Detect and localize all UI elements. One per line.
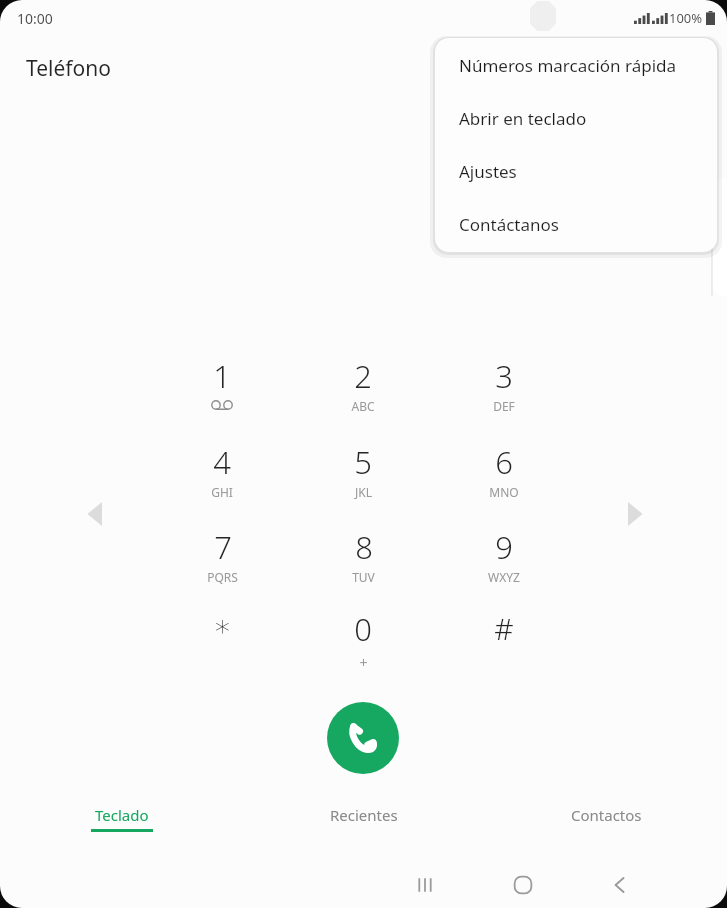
staticText: 0	[354, 608, 372, 650]
button[interactable]: 1	[166, 355, 278, 433]
staticText: Números marcación rápida	[459, 54, 677, 77]
staticText: 3	[495, 355, 513, 397]
staticText: TUV	[352, 569, 375, 585]
button[interactable]: Contactos	[485, 805, 727, 849]
staticText: 4	[213, 441, 231, 483]
staticText: JKL	[355, 484, 372, 500]
staticText: Abrir en teclado	[459, 107, 587, 130]
button[interactable]: 4	[166, 441, 278, 519]
staticText: Teléfono	[26, 54, 111, 83]
staticText: WXYZ	[488, 569, 520, 585]
button[interactable]: 3	[448, 355, 560, 433]
staticText: +	[359, 653, 368, 672]
button[interactable]: Ajustes	[435, 145, 717, 198]
button[interactable]: ∗	[166, 608, 278, 686]
button[interactable]: Back	[609, 874, 631, 896]
button[interactable]: 7	[166, 526, 278, 604]
staticText: ∗	[213, 608, 232, 643]
button[interactable]: 2	[307, 355, 419, 433]
button[interactable]: #	[448, 608, 560, 686]
staticText: 2	[354, 355, 372, 397]
staticText: Ajustes	[459, 160, 517, 183]
button[interactable]: 8	[307, 526, 419, 604]
staticText: 10:00	[17, 9, 53, 28]
button[interactable]: 5	[307, 441, 419, 519]
button[interactable]: Teclado	[0, 805, 243, 849]
staticText: Contactos	[571, 805, 642, 825]
staticText: 1	[213, 355, 231, 397]
button[interactable]: 9	[448, 526, 560, 604]
staticText: 100%	[669, 9, 703, 27]
staticText: PQRS	[207, 569, 238, 585]
staticText: 8	[355, 526, 373, 568]
button[interactable]: 6	[448, 441, 560, 519]
staticText: MNO	[489, 484, 519, 500]
button[interactable]: Abrir en teclado	[435, 92, 717, 145]
button[interactable]: Contáctanos	[435, 198, 717, 251]
staticText: 7	[214, 526, 232, 568]
button[interactable]: Call	[327, 702, 399, 774]
staticText: GHI	[211, 484, 233, 500]
staticText: Recientes	[330, 805, 398, 825]
button[interactable]: Recientes	[243, 805, 485, 849]
button[interactable]: Home	[512, 874, 534, 896]
staticText: #	[494, 608, 514, 649]
staticText: ABC	[351, 398, 375, 414]
staticText: 6	[495, 441, 513, 483]
staticText: 5	[354, 441, 372, 483]
button[interactable]: Previous	[85, 502, 105, 526]
staticText: Teclado	[95, 805, 149, 825]
staticText: DEF	[493, 398, 515, 414]
button[interactable]: Números marcación rápida	[435, 38, 717, 92]
staticText: 9	[495, 526, 513, 568]
button[interactable]: Recent apps	[414, 874, 436, 896]
button[interactable]: Next	[625, 502, 645, 526]
staticText: Contáctanos	[459, 213, 559, 236]
button[interactable]: 0	[307, 608, 419, 686]
